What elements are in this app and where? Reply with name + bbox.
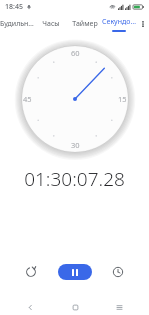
staticText: Секундо… <box>102 17 136 27</box>
button[interactable]: More options <box>136 14 149 34</box>
button[interactable]: Секундо… <box>102 14 136 34</box>
button[interactable]: Pause <box>58 264 92 280</box>
staticText: 60 <box>71 48 80 58</box>
button[interactable]: Recents <box>111 299 127 315</box>
button[interactable]: Reset <box>18 259 44 285</box>
button[interactable]: Home <box>67 299 83 315</box>
staticText: 15 <box>118 94 127 104</box>
staticText: 18:45 <box>5 2 23 12</box>
button[interactable]: Back <box>22 299 38 315</box>
staticText: 01:30:07.28 <box>24 166 125 192</box>
button[interactable]: Таймер <box>68 14 102 34</box>
staticText: 45 <box>23 94 32 104</box>
button[interactable]: Часы <box>34 14 68 34</box>
staticText: Часы <box>42 19 60 29</box>
staticText: Таймер <box>72 19 98 29</box>
button[interactable]: Lap <box>105 259 131 285</box>
button[interactable]: Будильн… <box>0 14 34 34</box>
staticText: 30 <box>71 140 80 150</box>
staticText: Будильн… <box>0 19 34 29</box>
